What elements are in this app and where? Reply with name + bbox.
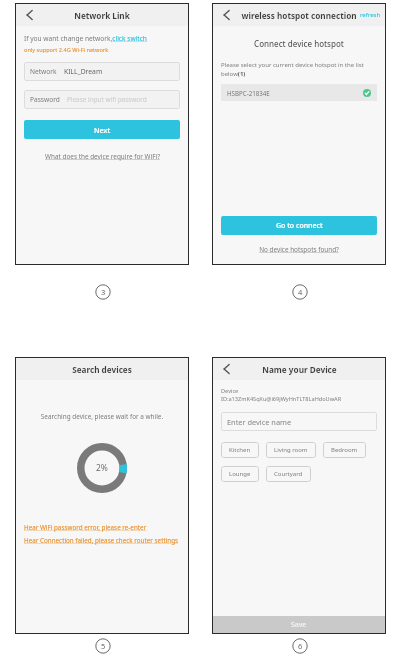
button[interactable]: Network [24, 62, 180, 81]
staticText: 2% [96, 462, 108, 474]
button[interactable]: Enter device name [221, 412, 377, 431]
staticText: Lounge [229, 470, 251, 478]
staticText: Hear Connection failed, please check rou… [24, 536, 179, 545]
staticText: Password [30, 95, 60, 104]
staticText: Bedroom [331, 446, 358, 454]
staticText: Kitchen [229, 446, 251, 454]
staticText: wireless hotspot connection [241, 10, 357, 21]
staticText: Connect device hotspot [221, 38, 377, 49]
staticText: Please input wifi password [67, 95, 147, 104]
button[interactable]: Hear WiFi password error, please re-ente… [24, 523, 180, 532]
button[interactable]: Save [213, 616, 385, 633]
staticText: Name your Device [262, 364, 337, 375]
button[interactable]: Password [24, 90, 180, 109]
button[interactable]: Back [218, 360, 236, 378]
button[interactable]: refresh [360, 11, 381, 19]
button[interactable]: What does the device require for WiFi? [24, 152, 180, 161]
staticText: 4 [298, 287, 303, 297]
staticText: 6 [298, 641, 303, 651]
staticText: Enter device name [227, 417, 292, 427]
button[interactable]: Lounge [221, 466, 259, 482]
button[interactable]: No device hotspots found? [221, 245, 377, 254]
button[interactable]: Courtyard [266, 466, 311, 482]
button[interactable]: Go to connect [221, 216, 377, 235]
staticText: If you want change network,click switch [24, 34, 147, 43]
staticText: Searching device, please wait for a whil… [24, 412, 180, 421]
staticText: Go to connect [276, 221, 323, 231]
staticText: 3 [101, 287, 106, 297]
staticText: What does the device require for WiFi? [45, 152, 160, 161]
staticText: KILL_Dream [64, 67, 103, 76]
staticText: Next [94, 125, 111, 135]
button[interactable]: Kitchen [221, 442, 259, 458]
staticText: Save [291, 620, 307, 629]
staticText: Hear WiFi password error, please re-ente… [24, 523, 147, 532]
staticText: Network [30, 67, 57, 76]
button[interactable]: Next [24, 120, 180, 139]
staticText: Living room [274, 446, 308, 454]
staticText: HSBPC-21834E [227, 89, 270, 97]
button[interactable]: Back [218, 6, 236, 24]
staticText: Please select your current device hotspo… [221, 61, 377, 77]
staticText: Device [221, 387, 239, 395]
button[interactable]: Living room [266, 442, 316, 458]
staticText: only support 2.4G Wi-Fi network [24, 46, 109, 54]
staticText: Search devices [72, 364, 132, 375]
button[interactable]: Back [21, 6, 39, 24]
staticText: Courtyard [274, 470, 303, 478]
staticText: ID:a13ZmK4SqXu@i69jWyHnTLT8LaHdoUwAR [221, 395, 342, 403]
button[interactable]: Bedroom [323, 442, 366, 458]
staticText: No device hotspots found? [259, 245, 339, 254]
button[interactable]: HSBPC-21834E [221, 84, 377, 101]
staticText: 5 [101, 641, 106, 651]
staticText: Network Link [74, 10, 130, 21]
staticText: refresh [360, 11, 381, 19]
button[interactable]: Hear Connection failed, please check rou… [24, 536, 180, 545]
